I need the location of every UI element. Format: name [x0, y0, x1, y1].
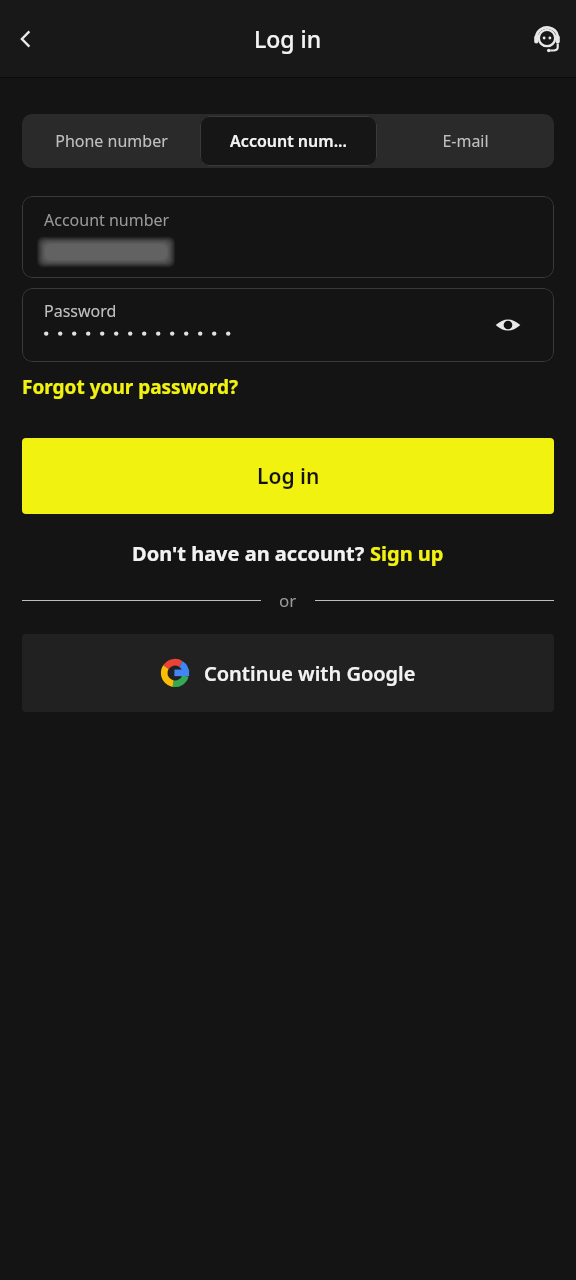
button[interactable]: Account number	[22, 196, 554, 278]
staticText: Forgot your password?	[22, 374, 238, 400]
button[interactable]: Log in	[22, 438, 554, 514]
staticText: Continue with Google	[204, 660, 416, 687]
staticText: E-mail	[442, 130, 489, 152]
staticText: Password	[44, 300, 117, 322]
staticText: Account num...	[230, 130, 347, 152]
button[interactable]: Support	[524, 16, 570, 62]
button[interactable]: Account num...	[200, 116, 377, 166]
staticText: or	[279, 589, 297, 612]
staticText: Sign up	[370, 540, 444, 567]
button[interactable]: Continue with Google	[22, 634, 554, 712]
staticText: Phone number	[55, 130, 168, 152]
button[interactable]: Sign up	[370, 540, 444, 567]
button[interactable]: Show password	[488, 305, 528, 345]
staticText: Don't have an account?	[132, 540, 370, 567]
button[interactable]: Forgot your password?	[22, 374, 238, 400]
staticText: Log in	[257, 462, 320, 491]
button[interactable]: Back	[4, 17, 48, 61]
button[interactable]: E-mail	[377, 116, 554, 166]
button[interactable]: Phone number	[22, 116, 200, 166]
staticText: Log in	[254, 23, 322, 54]
staticText: Account number	[44, 209, 170, 231]
button[interactable]: Password	[22, 288, 554, 362]
